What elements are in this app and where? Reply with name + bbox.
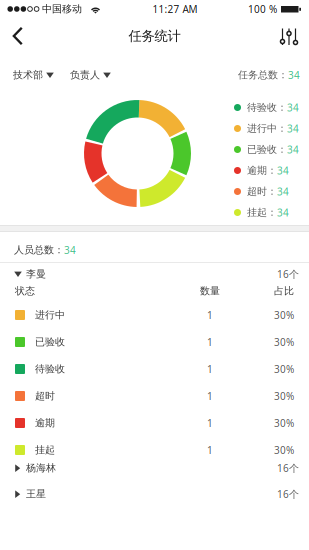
button[interactable]: 李曼 (0, 263, 309, 285)
staticText: 超时 (35, 390, 55, 402)
staticText: 进行中 (35, 309, 65, 321)
staticText: 34 (64, 243, 76, 257)
staticText: 30% (274, 362, 294, 376)
staticText: 人员总数： (14, 244, 64, 256)
staticText: 1 (207, 308, 213, 322)
staticText: 杨海林 (26, 462, 56, 474)
staticText: 34 (287, 143, 299, 156)
staticText: 任务总数： (238, 69, 288, 81)
staticText: 占比 (274, 285, 294, 297)
staticText: 1 (207, 443, 213, 457)
staticText: 李曼 (26, 268, 46, 280)
staticText: 王星 (26, 488, 46, 500)
staticText: 30% (274, 443, 294, 457)
staticText: 超时： (247, 185, 277, 198)
staticText: 待验收 (35, 363, 65, 375)
staticText: 状态 (15, 285, 35, 297)
staticText: 30% (274, 389, 294, 403)
staticText: 中国移动 (42, 3, 82, 15)
staticText: 30% (274, 308, 294, 322)
staticText: 16个 (277, 267, 299, 281)
staticText: 逾期： (247, 164, 277, 177)
button[interactable]: Back (0, 19, 40, 53)
staticText: 34 (277, 206, 289, 219)
staticText: 16个 (277, 461, 299, 475)
staticText: 34 (288, 68, 300, 82)
staticText: 已验收： (247, 143, 287, 156)
staticText: 34 (277, 185, 289, 198)
staticText: 11:27 AM (152, 2, 197, 16)
staticText: 34 (277, 164, 289, 177)
button[interactable]: 王星 (0, 481, 309, 507)
staticText: 1 (207, 416, 213, 430)
staticText: 负责人 (70, 69, 100, 81)
staticText: 已验收 (35, 336, 65, 348)
button[interactable]: 负责人 (54, 69, 111, 81)
staticText: 16个 (277, 487, 299, 501)
button[interactable]: 杨海林 (0, 455, 309, 481)
staticText: 1 (207, 362, 213, 376)
staticText: 挂起： (247, 206, 277, 219)
staticText: 1 (207, 389, 213, 403)
staticText: 30% (274, 335, 294, 349)
staticText: 100 % (248, 2, 277, 16)
button[interactable]: 技术部 (13, 69, 54, 81)
staticText: 30% (274, 416, 294, 430)
staticText: 技术部 (13, 69, 43, 81)
staticText: 挂起 (35, 444, 55, 456)
staticText: 数量 (200, 285, 220, 297)
staticText: 逾期 (35, 417, 55, 429)
staticText: 34 (287, 122, 299, 135)
staticText: 1 (207, 335, 213, 349)
staticText: 34 (287, 101, 299, 114)
button[interactable]: Filter (269, 19, 309, 53)
staticText: 任务统计 (128, 28, 180, 44)
staticText: 待验收： (247, 101, 287, 114)
staticText: 进行中： (247, 122, 287, 135)
